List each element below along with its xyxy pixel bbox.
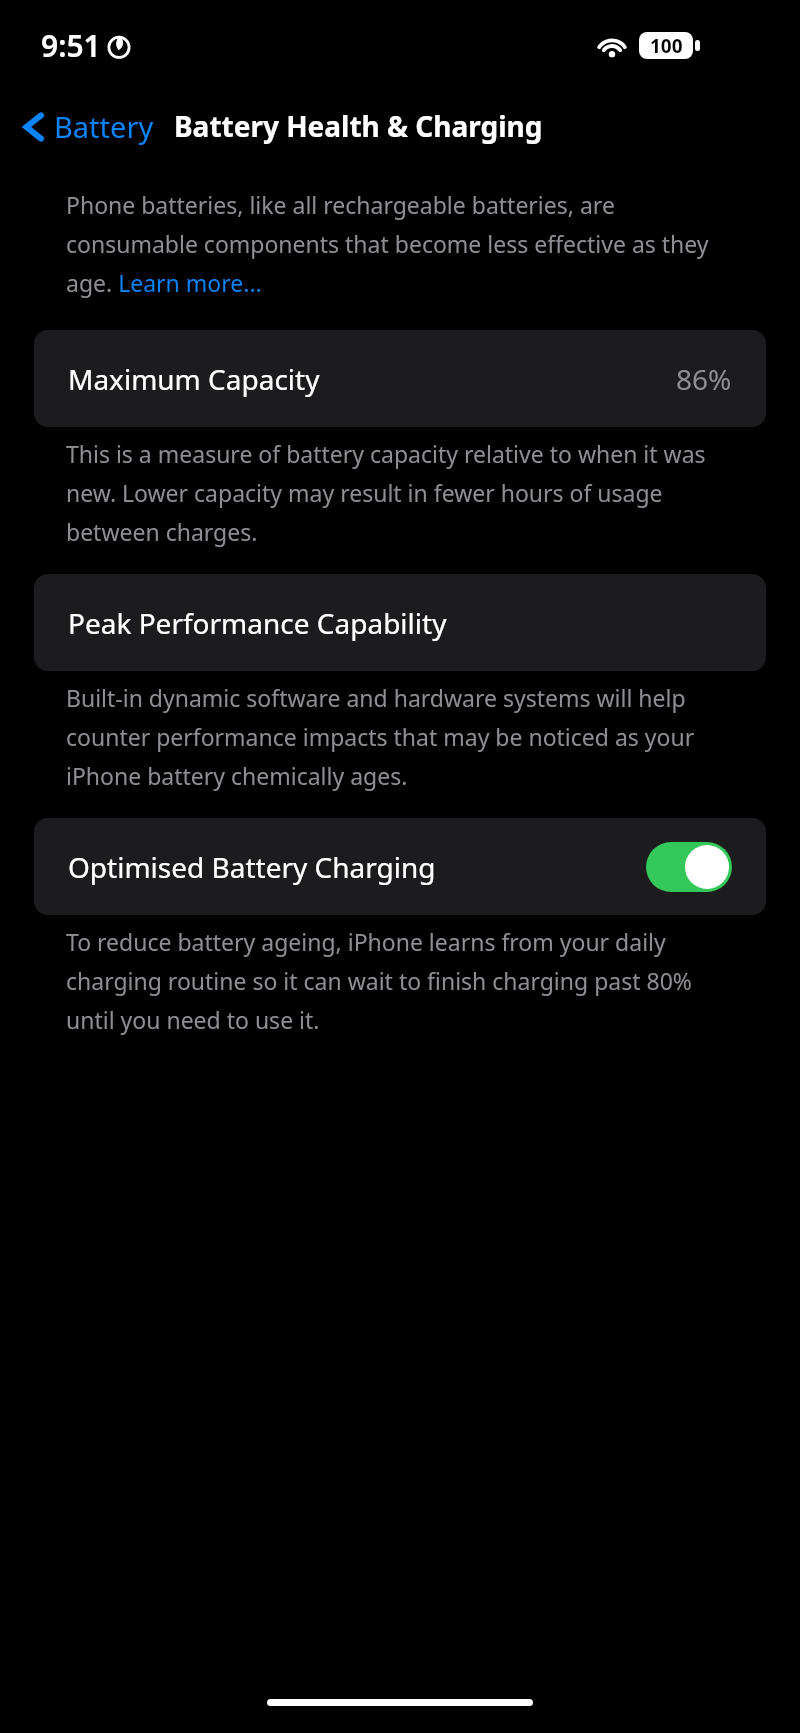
staticText: 9:51	[41, 25, 101, 66]
staticText: To reduce battery ageing, iPhone learns …	[66, 926, 734, 1035]
staticText: Optimised Battery Charging	[68, 848, 436, 886]
button[interactable]: Battery	[20, 101, 158, 152]
staticText: Built-in dynamic software and hardware s…	[66, 682, 734, 791]
button[interactable]: Peak Performance Capability	[34, 574, 766, 671]
staticText: Battery Health & Charging	[174, 107, 543, 145]
staticText: 100	[650, 33, 683, 59]
button[interactable]: Maximum Capacity	[34, 330, 766, 427]
staticText: Phone batteries, like all rechargeable b…	[66, 189, 734, 298]
button[interactable]: Optimised Battery Charging toggle, on	[646, 842, 732, 892]
staticText: Battery	[54, 107, 154, 146]
staticText: Maximum Capacity	[68, 360, 320, 398]
button[interactable]: Optimised Battery Charging	[34, 818, 766, 915]
staticText: Peak Performance Capability	[68, 604, 447, 642]
staticText: This is a measure of battery capacity re…	[66, 438, 734, 547]
staticText: 86%	[676, 360, 732, 398]
